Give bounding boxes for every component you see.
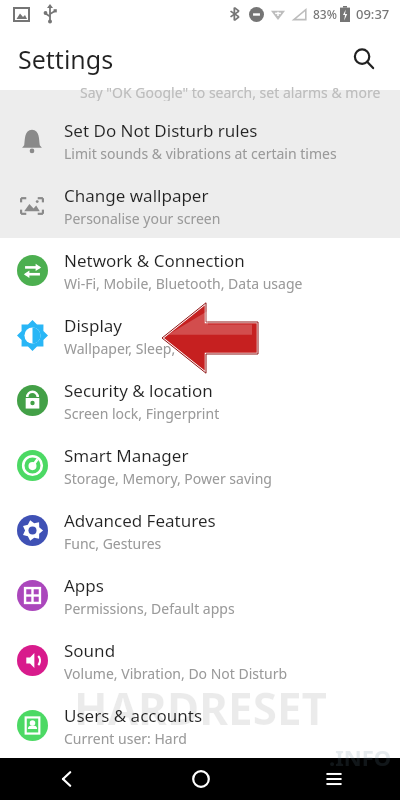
staticText: .INFO: [329, 742, 392, 772]
staticText: Wi-Fi, Mobile, Bluetooth, Data usage: [64, 274, 303, 293]
staticText: Say "OK Google" to search, set alarms & …: [80, 83, 381, 101]
button[interactable]: Security & location: [0, 368, 400, 433]
button[interactable]: Apps: [0, 563, 400, 628]
staticText: HARDRESET: [74, 678, 327, 738]
button[interactable]: Advanced Features: [0, 498, 400, 563]
staticText: Users & accounts: [64, 704, 203, 727]
staticText: Advanced Features: [64, 509, 216, 532]
staticText: Apps: [64, 574, 104, 597]
button[interactable]: Sound: [0, 628, 400, 693]
button[interactable]: Back: [0, 758, 134, 800]
button[interactable]: Search: [342, 37, 386, 81]
staticText: Func, Gestures: [64, 534, 162, 553]
staticText: Wallpaper, Sleep, Font size: [64, 339, 237, 358]
button[interactable]: Display: [0, 303, 400, 368]
staticText: Personalise your screen: [64, 209, 221, 228]
staticText: Volume, Vibration, Do Not Disturb: [64, 664, 288, 683]
staticText: Limit sounds & vibrations at certain tim…: [64, 144, 337, 163]
staticText: Security & location: [64, 379, 213, 402]
staticText: Network & Connection: [64, 249, 245, 272]
button[interactable]: Smart Manager: [0, 433, 400, 498]
button[interactable]: Users & accounts: [0, 693, 400, 758]
staticText: Sound: [64, 639, 116, 662]
staticText: Settings: [18, 42, 114, 76]
staticText: Screen lock, Fingerprint: [64, 404, 220, 423]
staticText: Smart Manager: [64, 444, 189, 467]
staticText: Storage, Memory, Power saving: [64, 469, 272, 488]
button[interactable]: Home: [134, 758, 267, 800]
staticText: Permissions, Default apps: [64, 599, 235, 618]
staticText: Set Do Not Disturb rules: [64, 119, 258, 142]
button[interactable]: Network & Connection: [0, 238, 400, 303]
button[interactable]: Change wallpaper: [0, 173, 400, 238]
staticText: Change wallpaper: [64, 184, 209, 207]
button[interactable]: Recent apps: [267, 758, 400, 800]
staticText: Display: [64, 314, 122, 337]
staticText: Current user: Hard: [64, 729, 187, 748]
staticText: 09:37: [356, 5, 390, 23]
button[interactable]: Set Do Not Disturb rules: [0, 108, 400, 173]
staticText: 83%: [313, 6, 337, 22]
